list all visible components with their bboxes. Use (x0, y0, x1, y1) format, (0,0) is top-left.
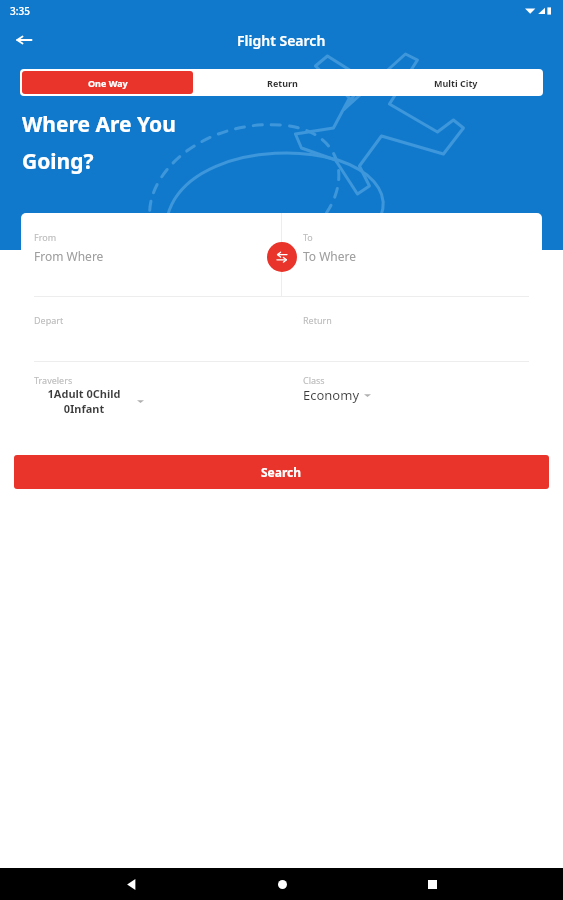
staticText: Depart (34, 314, 64, 326)
button[interactable]: Travelers (21, 362, 281, 426)
staticText: From (34, 231, 57, 243)
staticText: 1Adult 0Child 0Infant (34, 386, 134, 416)
staticText: Economy (303, 386, 360, 404)
button[interactable]: From (21, 213, 281, 296)
button[interactable]: Return (281, 297, 542, 361)
button[interactable]: Depart (21, 297, 281, 361)
staticText: Class (303, 374, 325, 386)
button[interactable]: Search (14, 455, 549, 489)
staticText: Return (303, 314, 332, 326)
staticText: From Where (34, 248, 104, 264)
button[interactable]: Back (8, 24, 40, 56)
button[interactable]: Swap origin and destination (267, 242, 297, 272)
staticText: Multi City (434, 77, 478, 89)
staticText: Going? (22, 147, 94, 176)
button[interactable]: Return (197, 71, 367, 94)
staticText: Flight Search (237, 31, 326, 50)
button[interactable]: Back (111, 868, 151, 900)
staticText: Where Are You (22, 110, 176, 139)
button[interactable]: To (281, 213, 542, 296)
button[interactable]: Home (262, 868, 302, 900)
staticText: To Where (303, 248, 357, 264)
button[interactable]: Class (281, 362, 542, 426)
staticText: To (303, 231, 313, 243)
button[interactable]: Recents (412, 868, 452, 900)
staticText: Return (267, 77, 298, 89)
staticText: One Way (88, 77, 128, 89)
staticText: 3:35 (10, 4, 30, 18)
staticText: Search (261, 464, 302, 480)
button[interactable]: One Way (22, 71, 193, 94)
button[interactable]: Multi City (371, 71, 541, 94)
staticText: Travelers (34, 374, 73, 386)
